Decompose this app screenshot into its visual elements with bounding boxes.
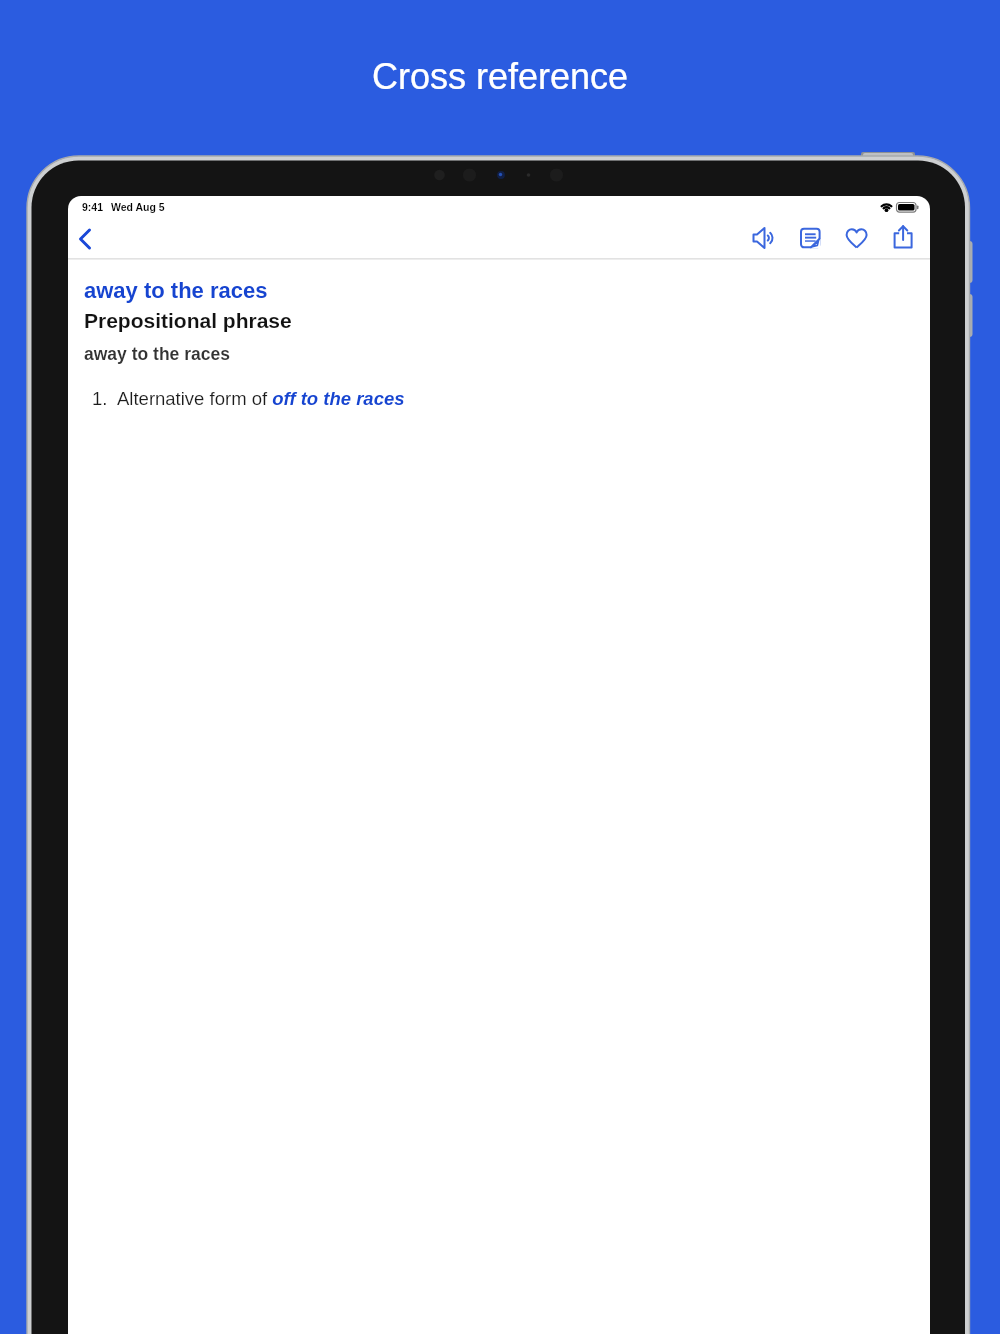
button[interactable] — [839, 221, 874, 256]
button[interactable] — [793, 221, 828, 256]
staticText: Wed Aug 5 — [111, 201, 165, 213]
button[interactable] — [886, 221, 921, 256]
button[interactable]: Alternative form of off to the races — [117, 388, 405, 409]
button[interactable] — [70, 222, 104, 256]
staticText: Cross reference — [0, 56, 1000, 96]
button[interactable] — [745, 221, 780, 256]
staticText: 9:41 — [82, 201, 104, 213]
button[interactable]: away to the races — [84, 278, 268, 303]
staticText: 1. — [92, 388, 108, 409]
staticText: Prepositional phrase — [84, 309, 292, 332]
staticText: away to the races — [84, 344, 230, 364]
